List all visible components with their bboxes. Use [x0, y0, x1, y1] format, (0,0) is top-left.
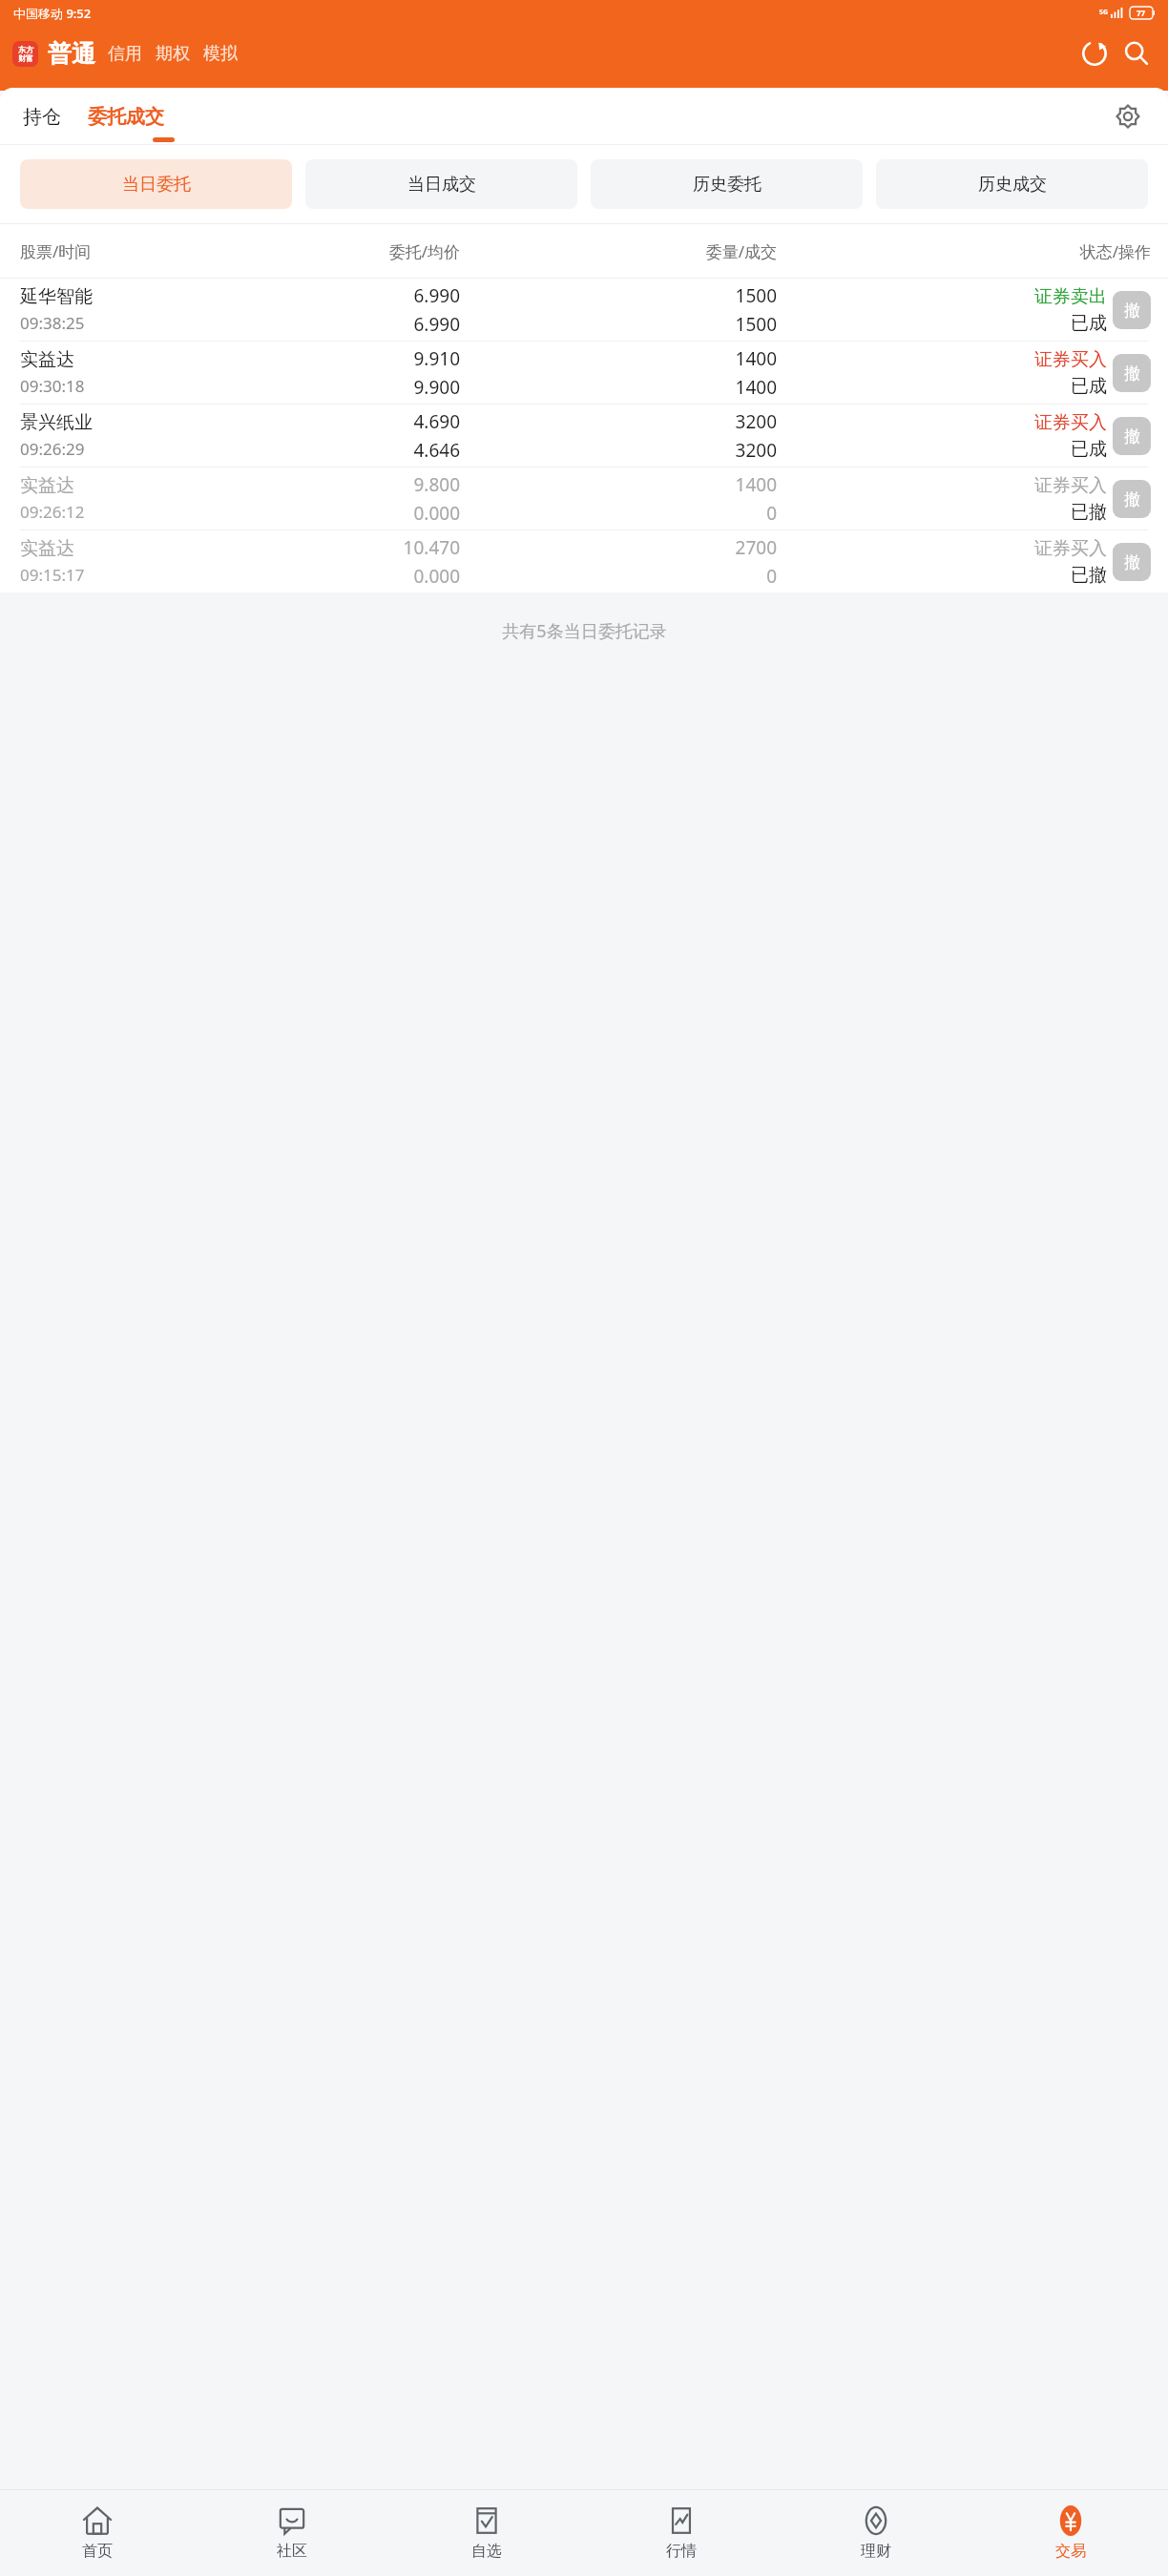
staticText: 信用 [108, 43, 142, 65]
staticText: 自选 [471, 2542, 502, 2561]
staticText: 景兴纸业 [20, 411, 93, 434]
staticText: 3200 [735, 409, 777, 434]
staticText: 撤 [1124, 552, 1140, 572]
staticText: 共有5条当日委托记录 [502, 619, 667, 643]
staticText: 模拟 [203, 43, 238, 65]
staticText: 6.990 [413, 312, 460, 337]
staticText: 东方 财富 [18, 45, 33, 63]
staticText: 9.900 [413, 375, 460, 400]
staticText: 期权 [156, 43, 190, 65]
button[interactable]: 普通 [48, 39, 95, 69]
button[interactable]: 行情 [584, 2490, 779, 2576]
button[interactable]: 社区 [195, 2490, 389, 2576]
staticText: 中国移动 9:52 [13, 5, 92, 22]
staticText: 历史成交 [978, 174, 1047, 196]
button[interactable]: 撤 [1113, 543, 1151, 581]
staticText: 9.800 [413, 472, 460, 497]
staticText: 当日成交 [407, 174, 476, 196]
button[interactable]: Refresh [1074, 33, 1115, 73]
button[interactable]: 信用 [108, 43, 142, 65]
staticText: 证券买入 [1034, 537, 1107, 560]
staticText: 历史委托 [693, 174, 761, 196]
button[interactable]: 撤 [1113, 354, 1151, 392]
staticText: 首页 [82, 2542, 113, 2561]
staticText: 0 [766, 564, 777, 589]
staticText: 社区 [277, 2542, 307, 2561]
staticText: 行情 [666, 2542, 697, 2561]
button[interactable]: 东方 财富 [12, 41, 38, 67]
staticText: 已撤 [1071, 501, 1107, 524]
staticText: 已成 [1071, 375, 1107, 398]
staticText: 10.470 [403, 535, 460, 560]
staticText: 实益达 [20, 474, 74, 497]
button[interactable]: Settings [1109, 97, 1147, 135]
staticText: 实益达 [20, 348, 74, 371]
staticText: 委量/成交 [460, 240, 777, 262]
staticText: 09:26:12 [20, 501, 85, 523]
button[interactable]: 历史成交 [876, 159, 1148, 209]
staticText: 当日委托 [122, 174, 191, 196]
staticText: 撤 [1124, 489, 1140, 509]
staticText: 1500 [735, 283, 777, 308]
staticText: 3200 [735, 438, 777, 463]
staticText: 1500 [735, 312, 777, 337]
button[interactable]: Search [1116, 33, 1157, 73]
button[interactable]: 撤 [1113, 291, 1151, 329]
staticText: 已成 [1071, 438, 1107, 461]
staticText: 1400 [735, 346, 777, 371]
button[interactable]: 理财 [779, 2490, 973, 2576]
button[interactable]: 实益达 [0, 530, 1168, 592]
button[interactable]: 持仓 [23, 99, 61, 135]
staticText: 0.000 [413, 501, 460, 526]
button[interactable]: 延华智能 [0, 279, 1168, 341]
staticText: 撤 [1124, 301, 1140, 321]
button[interactable]: 交易 [973, 2490, 1168, 2576]
button[interactable]: 当日成交 [305, 159, 577, 209]
staticText: 实益达 [20, 537, 74, 560]
button[interactable]: 委托成交 [88, 105, 164, 129]
staticText: 77 [1137, 8, 1146, 18]
staticText: 09:26:29 [20, 438, 85, 460]
staticText: 09:15:17 [20, 564, 85, 586]
staticText: 理财 [861, 2542, 891, 2561]
staticText: 09:30:18 [20, 375, 85, 397]
staticText: 撤 [1124, 364, 1140, 384]
staticText: 委托/均价 [142, 240, 460, 262]
staticText: 6.990 [413, 283, 460, 308]
button[interactable]: 实益达 [0, 342, 1168, 404]
staticText: 0.000 [413, 564, 460, 589]
staticText: 1400 [735, 472, 777, 497]
staticText: 4.690 [413, 409, 460, 434]
button[interactable]: 首页 [0, 2490, 195, 2576]
staticText: 已撤 [1071, 564, 1107, 587]
button[interactable]: 景兴纸业 [0, 405, 1168, 467]
staticText: 5G [1099, 8, 1109, 17]
button[interactable]: 撤 [1113, 417, 1151, 455]
staticText: 交易 [1055, 2542, 1086, 2561]
staticText: 09:38:25 [20, 312, 85, 334]
staticText: 持仓 [23, 105, 61, 129]
button[interactable]: 实益达 [0, 467, 1168, 530]
staticText: 证券买入 [1034, 474, 1107, 497]
staticText: 9.910 [413, 346, 460, 371]
staticText: 撤 [1124, 426, 1140, 447]
staticText: 股票/时间 [20, 240, 142, 262]
staticText: 证券买入 [1034, 348, 1107, 371]
staticText: 普通 [48, 39, 95, 69]
staticText: 已成 [1071, 312, 1107, 335]
button[interactable]: 历史委托 [591, 159, 863, 209]
button[interactable]: 期权 [156, 43, 190, 65]
staticText: 0 [766, 501, 777, 526]
staticText: 1400 [735, 375, 777, 400]
button[interactable]: 撤 [1113, 480, 1151, 518]
staticText: 证券卖出 [1034, 285, 1107, 308]
button[interactable]: 当日委托 [20, 159, 292, 209]
button[interactable]: 模拟 [203, 43, 238, 65]
staticText: 证券买入 [1034, 411, 1107, 434]
staticText: 2700 [735, 535, 777, 560]
staticText: 4.646 [413, 438, 460, 463]
staticText: 状态/操作 [777, 240, 1151, 262]
button[interactable]: 自选 [389, 2490, 584, 2576]
staticText: 委托成交 [88, 105, 164, 129]
staticText: 延华智能 [20, 285, 93, 308]
